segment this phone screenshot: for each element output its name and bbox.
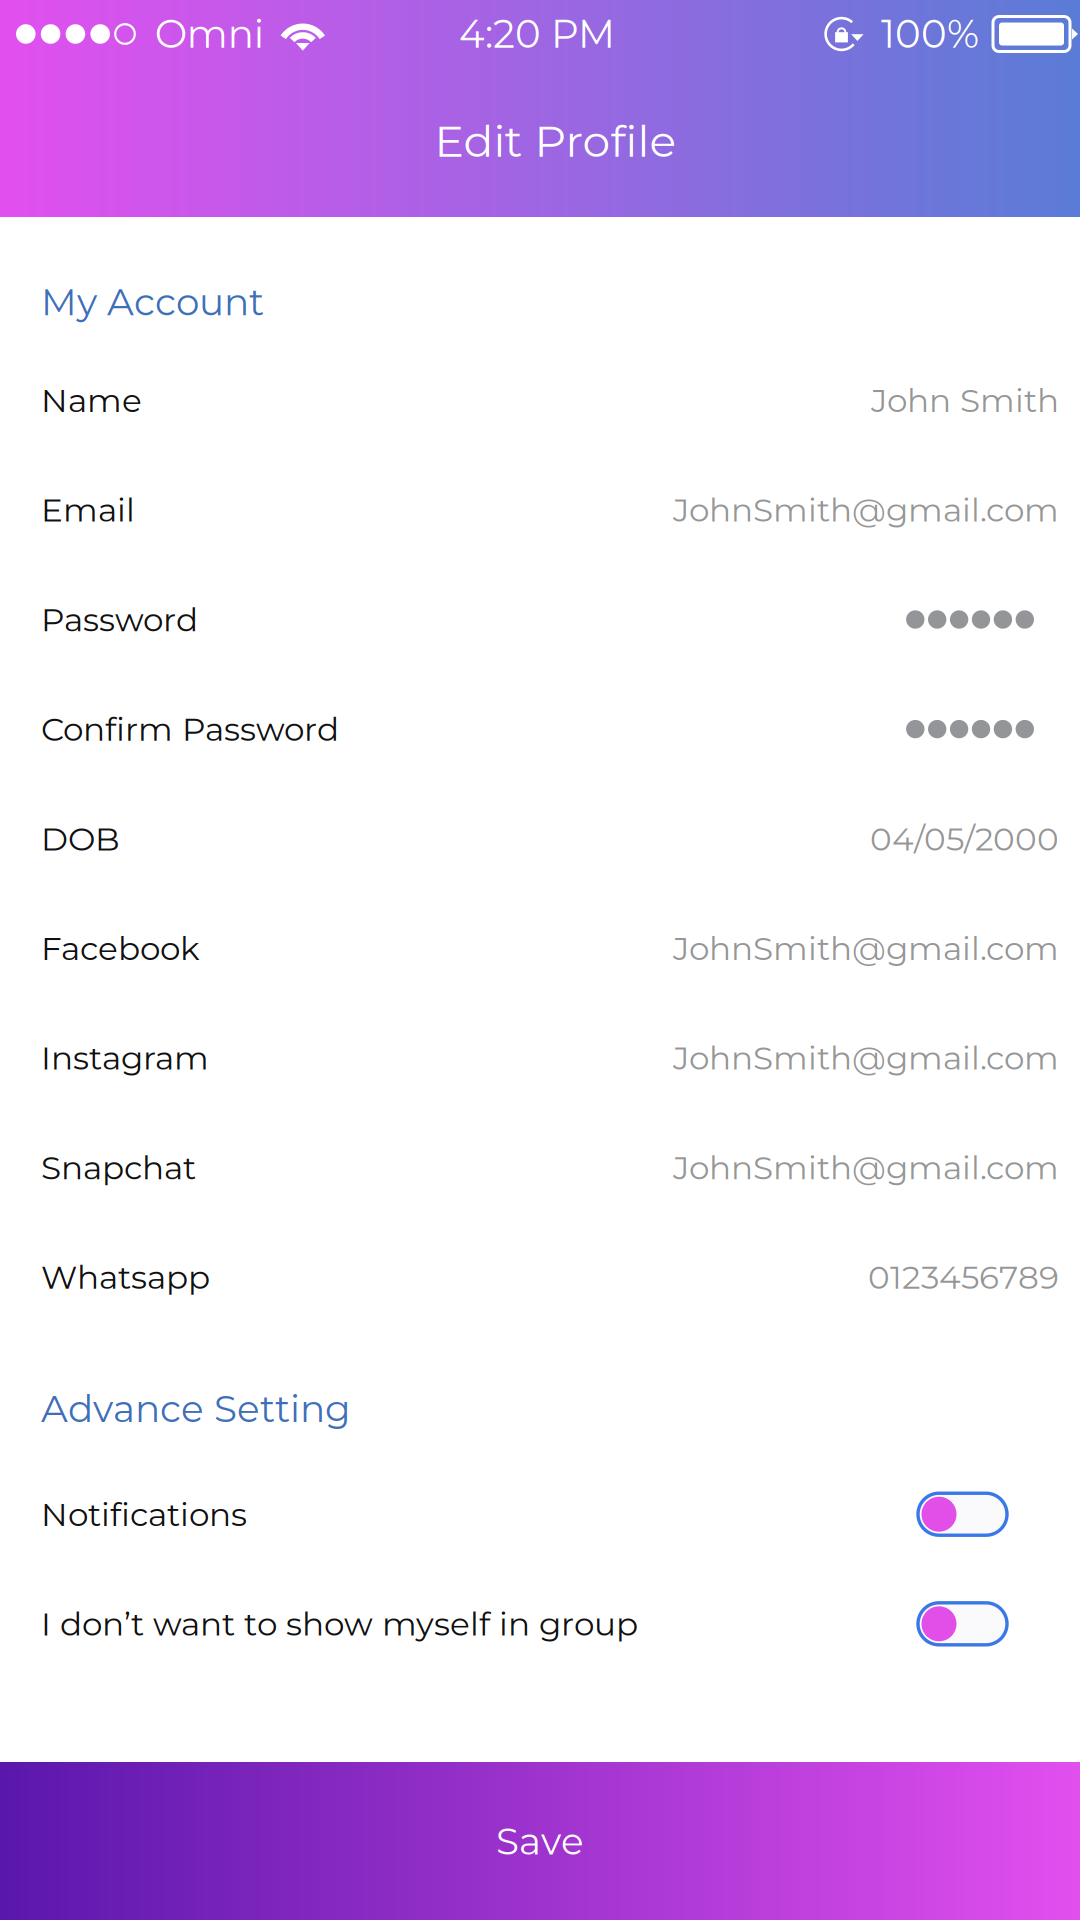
staticText: Password bbox=[41, 600, 198, 639]
staticText: JohnSmith@gmail.com bbox=[673, 928, 1059, 968]
staticText: Confirm Password bbox=[41, 709, 339, 749]
staticText: Advance Setting bbox=[41, 1386, 351, 1431]
staticText: My Account bbox=[41, 279, 264, 324]
button[interactable]: Save bbox=[0, 1762, 1080, 1920]
staticText: DOB bbox=[41, 819, 120, 859]
button[interactable]: Confirm Password bbox=[0, 674, 1080, 784]
staticText: Save bbox=[496, 1818, 584, 1864]
staticText: Whatsapp bbox=[41, 1257, 210, 1297]
button[interactable]: I don’t want to show myself in group bbox=[0, 1569, 1080, 1679]
button[interactable]: DOB bbox=[0, 784, 1080, 893]
staticText: Instagram bbox=[41, 1038, 209, 1078]
button[interactable]: Whatsapp bbox=[0, 1222, 1080, 1332]
staticText: Name bbox=[41, 380, 142, 420]
staticText: Email bbox=[41, 490, 135, 530]
staticText: Facebook bbox=[41, 928, 200, 968]
staticText: Omni bbox=[155, 10, 264, 57]
staticText: JohnSmith@gmail.com bbox=[673, 490, 1059, 530]
staticText: John Smith bbox=[871, 380, 1059, 420]
staticText: I don’t want to show myself in group bbox=[41, 1604, 638, 1644]
staticText: 4:20 PM bbox=[459, 10, 615, 57]
staticText: JohnSmith@gmail.com bbox=[673, 1148, 1059, 1187]
button[interactable]: Facebook bbox=[0, 893, 1080, 1003]
button[interactable]: Email bbox=[0, 455, 1080, 565]
staticText: 0123456789 bbox=[868, 1257, 1059, 1297]
button[interactable]: Notifications bbox=[0, 1459, 1080, 1569]
staticText: Snapchat bbox=[41, 1148, 196, 1187]
staticText: 100% bbox=[881, 10, 979, 57]
button[interactable]: Password bbox=[0, 565, 1080, 674]
button[interactable]: Snapchat bbox=[0, 1113, 1080, 1222]
button[interactable]: Instagram bbox=[0, 1003, 1080, 1113]
staticText: Edit Profile bbox=[434, 114, 676, 168]
staticText: Notifications bbox=[41, 1494, 247, 1534]
staticText: JohnSmith@gmail.com bbox=[673, 1038, 1059, 1078]
staticText: 04/05/2000 bbox=[870, 819, 1059, 859]
button[interactable]: Name bbox=[0, 345, 1080, 455]
